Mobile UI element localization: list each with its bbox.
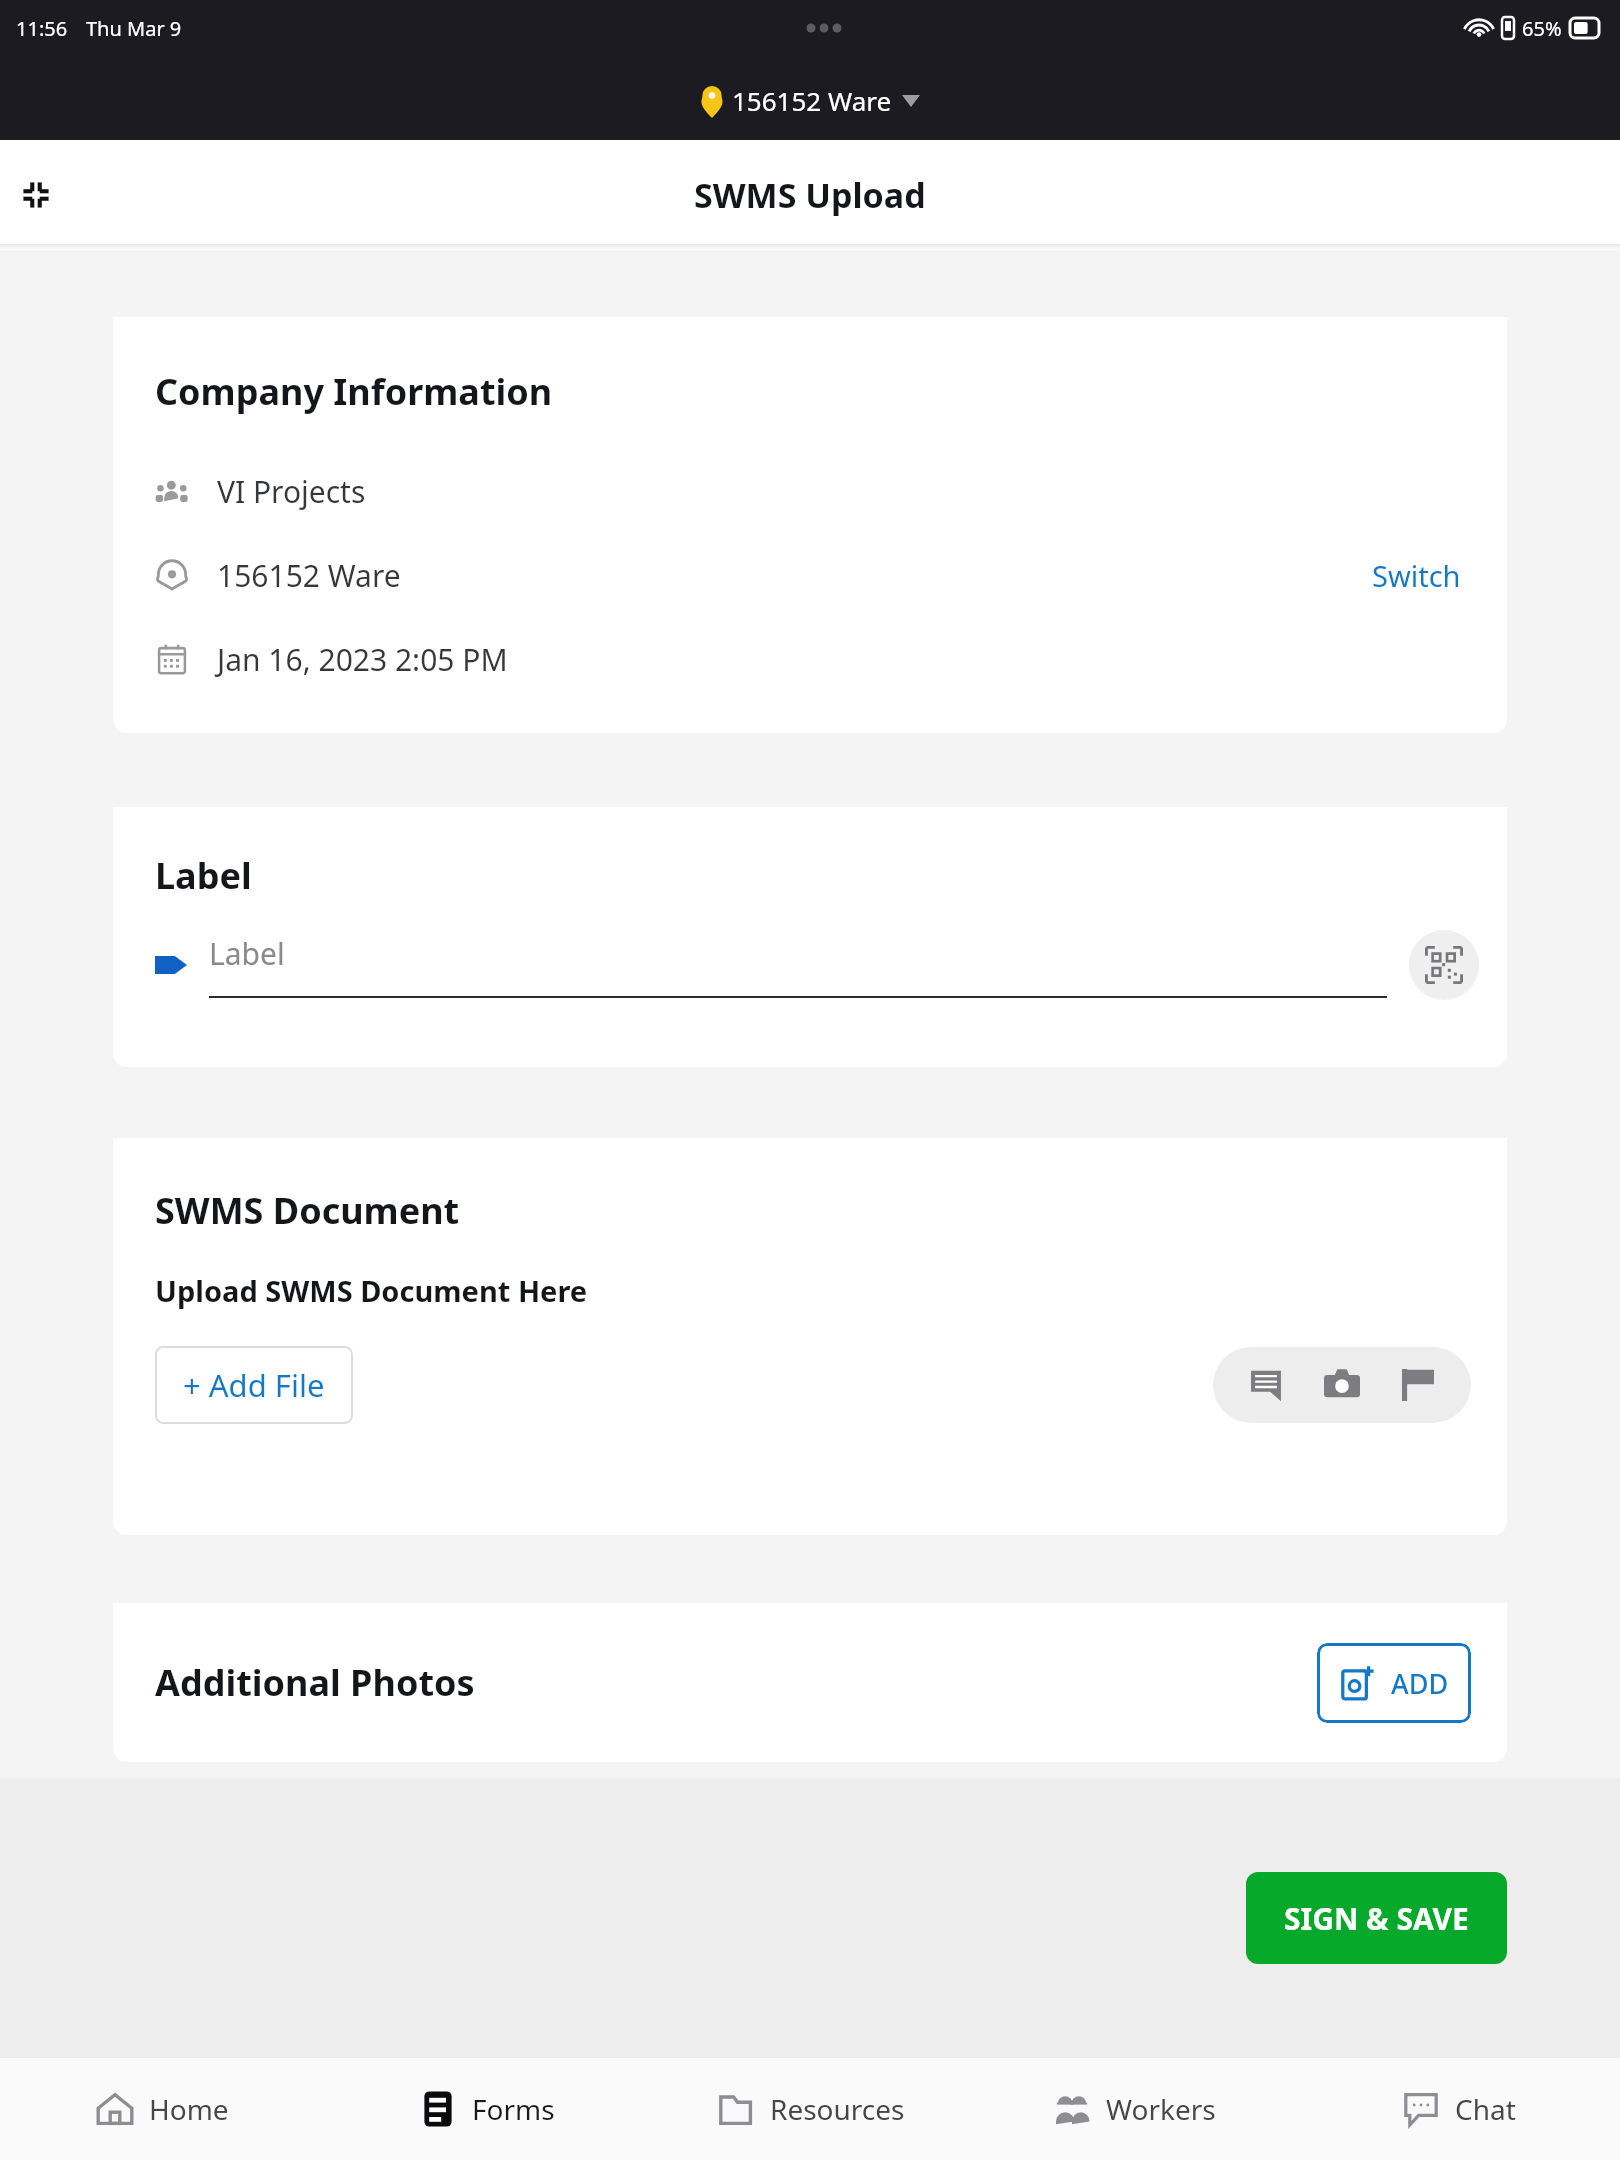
- button[interactable]: Comment: [1239, 1358, 1293, 1412]
- staticText: 156152 Ware: [732, 83, 892, 118]
- staticText: + Add File: [183, 1364, 325, 1406]
- staticText: 156152 Ware: [217, 555, 401, 596]
- staticText: Home: [149, 2090, 229, 2128]
- staticText: SIGN & SAVE: [1284, 1898, 1469, 1939]
- staticText: SWMS Document: [155, 1186, 460, 1235]
- staticText: Label: [209, 933, 285, 974]
- staticText: ADD: [1391, 1665, 1449, 1702]
- button[interactable]: + Add File: [155, 1346, 353, 1424]
- staticText: VI Projects: [217, 471, 366, 512]
- staticText: Forms: [472, 2090, 555, 2128]
- button[interactable]: Forms: [324, 2058, 648, 2160]
- button[interactable]: ADD: [1317, 1643, 1471, 1723]
- button[interactable]: SIGN & SAVE: [1246, 1872, 1507, 1964]
- staticText: Workers: [1106, 2090, 1216, 2128]
- button[interactable]: Home: [0, 2058, 324, 2160]
- button[interactable]: 156152 Ware: [700, 83, 920, 118]
- button[interactable]: Collapse: [8, 167, 64, 223]
- button[interactable]: Workers: [972, 2058, 1296, 2160]
- staticText: Switch: [1372, 556, 1461, 595]
- staticText: Jan 16, 2023 2:05 PM: [217, 639, 508, 680]
- button[interactable]: Switch: [1362, 550, 1471, 601]
- staticText: Upload SWMS Document Here: [155, 1271, 588, 1310]
- staticText: Thu Mar 9: [86, 15, 182, 42]
- button[interactable]: Take photo: [1315, 1358, 1369, 1412]
- button[interactable]: Resources: [648, 2058, 972, 2160]
- staticText: 65%: [1522, 15, 1562, 42]
- button[interactable]: Chat: [1296, 2058, 1620, 2160]
- button[interactable]: Flag: [1391, 1358, 1445, 1412]
- button[interactable]: Scan QR code: [1409, 930, 1479, 1000]
- staticText: SWMS Upload: [694, 172, 926, 218]
- staticText: Resources: [770, 2090, 905, 2128]
- staticText: Label: [155, 851, 252, 900]
- staticText: Chat: [1455, 2090, 1516, 2128]
- staticText: Company Information: [155, 367, 553, 416]
- staticText: Additional Photos: [155, 1658, 475, 1707]
- staticText: 11:56: [16, 15, 68, 42]
